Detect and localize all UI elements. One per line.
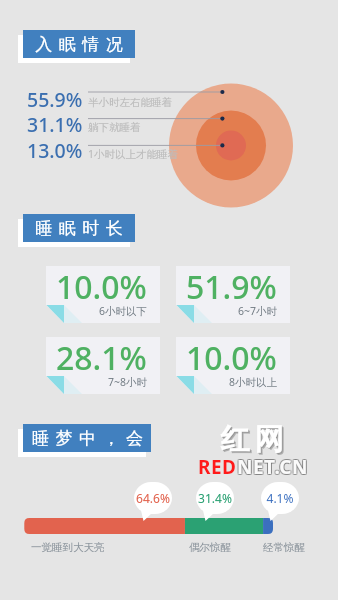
- staticText: 28.1%: [56, 336, 147, 380]
- staticText: 31.1%: [27, 111, 83, 138]
- staticText: 睡眠时长: [32, 218, 126, 239]
- staticText: 睡梦中，会: [32, 428, 150, 449]
- staticText: NET.CN: [238, 455, 309, 481]
- staticText: RED: [198, 454, 237, 480]
- staticText: 7~8小时: [108, 375, 148, 389]
- staticText: 红网: [218, 421, 286, 458]
- staticText: 10.0%: [56, 265, 147, 309]
- staticText: 55.9%: [27, 86, 83, 113]
- button[interactable]: 51.9%: [176, 266, 290, 323]
- button[interactable]: 4.1%: [261, 482, 299, 522]
- staticText: RED: [199, 454, 238, 480]
- staticText: 偶尔惊醒: [189, 541, 231, 554]
- staticText: NET.CN: [237, 453, 308, 479]
- staticText: 64.6%: [134, 490, 172, 506]
- button[interactable]: 64.6%: [134, 482, 172, 522]
- staticText: RED: [197, 454, 236, 480]
- staticText: 10.0%: [186, 336, 277, 380]
- staticText: NET.CN: [238, 454, 309, 480]
- staticText: RED: [198, 455, 237, 481]
- button[interactable]: 入眠情况: [23, 30, 135, 58]
- button[interactable]: 31.4%: [196, 482, 234, 522]
- staticText: 红网: [219, 422, 287, 459]
- staticText: 31.4%: [196, 490, 234, 506]
- staticText: RED: [199, 453, 238, 479]
- staticText: 一觉睡到大天亮: [31, 541, 105, 554]
- staticText: RED: [198, 453, 237, 479]
- staticText: NET.CN: [236, 454, 307, 480]
- staticText: 1小时以上才能睡着: [88, 147, 179, 161]
- staticText: NET.CN: [237, 455, 308, 481]
- staticText: NET.CN: [238, 453, 309, 479]
- staticText: NET.CN: [237, 454, 308, 480]
- staticText: 4.1%: [261, 490, 299, 506]
- staticText: 6~7小时: [238, 304, 278, 318]
- staticText: 8小时以上: [229, 375, 278, 389]
- button[interactable]: 10.0%: [46, 266, 160, 323]
- staticText: RED: [197, 455, 236, 481]
- staticText: 躺下就睡着: [88, 121, 141, 134]
- staticText: NET.CN: [236, 455, 307, 481]
- staticText: RED: [199, 455, 238, 481]
- staticText: RED: [197, 453, 236, 479]
- staticText: 6小时以下: [99, 304, 148, 318]
- button[interactable]: 睡眠时长: [23, 214, 135, 242]
- button[interactable]: 睡梦中，会: [23, 424, 151, 452]
- staticText: 51.9%: [186, 265, 277, 309]
- button[interactable]: 10.0%: [176, 337, 290, 394]
- staticText: 经常惊醒: [263, 541, 305, 554]
- staticText: NET.CN: [236, 453, 307, 479]
- staticText: 半小时左右能睡着: [88, 96, 172, 109]
- staticText: 入眠情况: [32, 34, 126, 55]
- button[interactable]: 28.1%: [46, 337, 160, 394]
- staticText: 13.0%: [27, 137, 83, 164]
- staticText: 红网: [220, 423, 288, 460]
